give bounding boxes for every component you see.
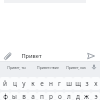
button[interactable]: ш — [64, 77, 73, 90]
button[interactable]: й — [0, 77, 10, 90]
staticText: з — [85, 79, 89, 88]
staticText: й — [3, 79, 7, 88]
staticText: к — [31, 79, 35, 88]
button[interactable]: Attach file — [0, 50, 16, 61]
button[interactable]: Voice input — [88, 62, 100, 72]
staticText: х — [94, 79, 98, 88]
staticText: у — [22, 79, 26, 88]
button[interactable]: щ — [73, 77, 82, 90]
staticText: е — [40, 79, 44, 88]
staticText: п — [40, 92, 44, 100]
staticText: Привет, как — [66, 65, 86, 70]
staticText: ф — [3, 92, 8, 100]
button[interactable]: а — [28, 92, 37, 100]
staticText: щ — [75, 79, 81, 88]
button[interactable]: ф — [0, 92, 10, 100]
button[interactable]: Send — [82, 50, 100, 61]
button[interactable]: з — [82, 77, 91, 90]
staticText: г — [58, 79, 61, 88]
button[interactable]: р — [46, 92, 55, 100]
button[interactable]: Приветствие — [32, 62, 64, 72]
staticText: Привет — [21, 52, 42, 60]
staticText: р — [49, 92, 53, 100]
button[interactable]: Привет, как — [64, 62, 88, 72]
button[interactable]: л — [64, 92, 73, 100]
staticText: л — [67, 92, 71, 100]
button[interactable]: у — [19, 77, 28, 90]
button[interactable]: д — [73, 92, 82, 100]
button[interactable]: о — [55, 92, 64, 100]
button[interactable]: н — [46, 77, 55, 90]
button[interactable]: э — [91, 92, 100, 100]
button[interactable]: ц — [10, 77, 19, 90]
staticText: а — [31, 92, 35, 100]
staticText: ш — [66, 79, 72, 88]
button[interactable]: ж — [82, 92, 91, 100]
button[interactable]: в — [19, 92, 28, 100]
button[interactable]: к — [28, 77, 37, 90]
staticText: Приветствие — [37, 65, 59, 70]
staticText: ы — [12, 92, 17, 100]
staticText: э — [94, 92, 98, 100]
staticText: Привет, ты — [7, 65, 26, 70]
staticText: ж — [84, 92, 89, 100]
button[interactable]: Привет, ты — [0, 62, 32, 72]
button[interactable]: п — [37, 92, 46, 100]
button[interactable]: ы — [10, 92, 19, 100]
button[interactable]: х — [91, 77, 100, 90]
staticText: в — [22, 92, 26, 100]
staticText: о — [58, 92, 62, 100]
staticText: н — [49, 79, 53, 88]
staticText: д — [76, 92, 80, 100]
button[interactable]: г — [55, 77, 64, 90]
staticText: ц — [13, 79, 17, 88]
button[interactable]: е — [37, 77, 46, 90]
